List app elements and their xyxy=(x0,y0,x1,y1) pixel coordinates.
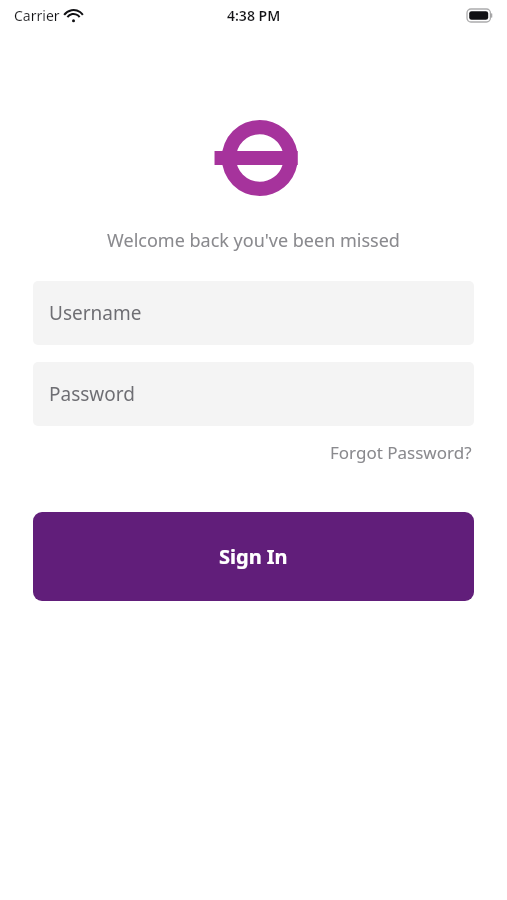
staticText: Sign In xyxy=(219,543,288,570)
staticText: Carrier xyxy=(14,6,60,25)
other: App logo xyxy=(206,119,302,197)
button[interactable]: Username xyxy=(33,281,474,345)
staticText: Username xyxy=(49,300,142,326)
staticText: Welcome back you've been missed xyxy=(0,228,507,253)
staticText: Password xyxy=(49,381,135,407)
button[interactable]: Sign In xyxy=(33,512,474,601)
staticText: 4:38 PM xyxy=(227,6,281,25)
button[interactable]: Forgot Password? xyxy=(328,437,474,468)
staticText: Forgot Password? xyxy=(330,441,472,464)
button[interactable]: Password xyxy=(33,362,474,426)
